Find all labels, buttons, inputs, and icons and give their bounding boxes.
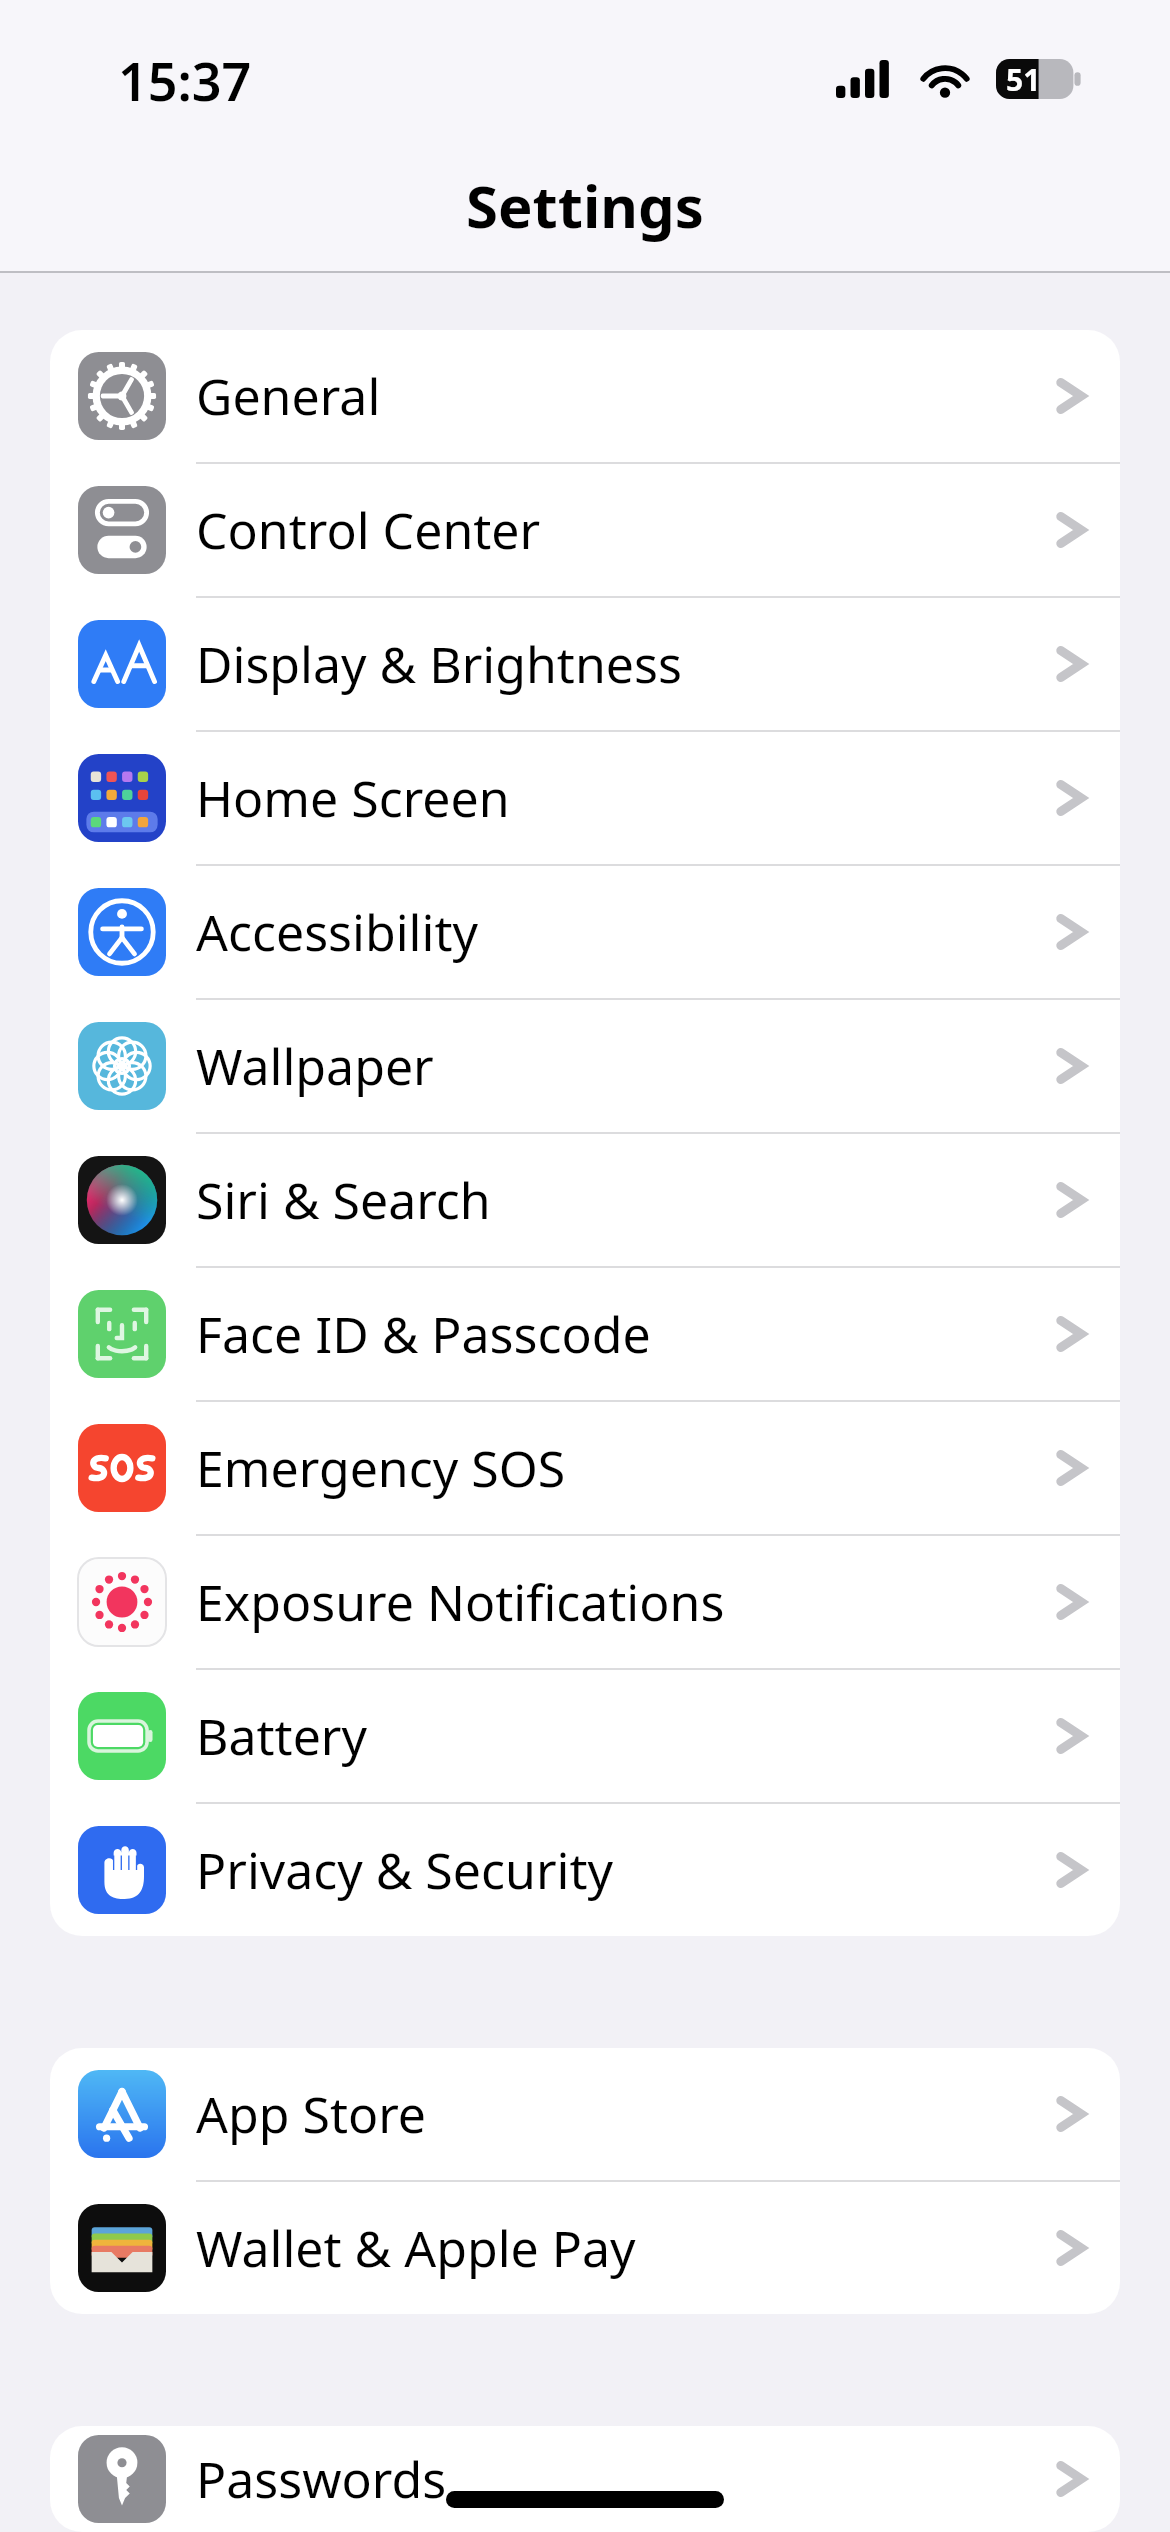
button[interactable]: Home Screen — [50, 732, 1120, 866]
other: Privacy & Security — [78, 1826, 166, 1914]
button[interactable]: Privacy & Security — [50, 1804, 1120, 1936]
staticText: Exposure Notifications — [196, 1568, 1054, 1636]
staticText: Emergency SOS — [196, 1434, 1054, 1502]
other: Passwords — [78, 2435, 166, 2523]
other: Battery — [78, 1692, 166, 1780]
button[interactable]: Passwords — [50, 2426, 1120, 2532]
button[interactable]: Battery — [50, 1670, 1120, 1804]
staticText: Settings — [466, 166, 704, 245]
button[interactable]: Exposure Notifications — [50, 1536, 1120, 1670]
staticText: Control Center — [196, 496, 1054, 564]
staticText: Siri & Search — [196, 1166, 1054, 1234]
staticText: Display & Brightness — [196, 630, 1054, 698]
button[interactable]: Wallpaper — [50, 1000, 1120, 1134]
other: App Store — [78, 2070, 166, 2158]
other: Wallpaper — [78, 1022, 166, 1110]
other: Home Screen — [78, 754, 166, 842]
staticText: Accessibility — [196, 898, 1054, 966]
button[interactable]: General — [50, 330, 1120, 464]
staticText: Privacy & Security — [196, 1836, 1054, 1904]
other: Display & Brightness — [78, 620, 166, 708]
other: Wallet & Apple Pay — [78, 2204, 166, 2292]
staticText: Battery — [196, 1702, 1054, 1770]
other: Face ID & Passcode — [78, 1290, 166, 1378]
other: General — [78, 352, 166, 440]
other: Accessibility — [78, 888, 166, 976]
button[interactable]: Face ID & Passcode — [50, 1268, 1120, 1402]
button[interactable]: Emergency SOS — [50, 1402, 1120, 1536]
staticText: General — [196, 362, 1054, 430]
staticText: Wallpaper — [196, 1032, 1054, 1100]
staticText: 51 — [1006, 59, 1041, 99]
button[interactable]: Control Center — [50, 464, 1120, 598]
button[interactable]: Display & Brightness — [50, 598, 1120, 732]
other: Siri & Search — [78, 1156, 166, 1244]
staticText: Wallet & Apple Pay — [196, 2214, 1054, 2282]
button[interactable]: Siri & Search — [50, 1134, 1120, 1268]
staticText: 15:37 — [118, 45, 252, 116]
staticText: Face ID & Passcode — [196, 1300, 1054, 1368]
button[interactable]: App Store — [50, 2048, 1120, 2182]
other: Emergency SOS — [78, 1424, 166, 1512]
button[interactable]: Accessibility — [50, 866, 1120, 1000]
staticText: App Store — [196, 2080, 1054, 2148]
staticText: Passwords — [196, 2445, 1054, 2513]
other: Control Center — [78, 486, 166, 574]
staticText: Home Screen — [196, 764, 1054, 832]
other: Exposure Notifications — [78, 1558, 166, 1646]
button[interactable]: Wallet & Apple Pay — [50, 2182, 1120, 2314]
